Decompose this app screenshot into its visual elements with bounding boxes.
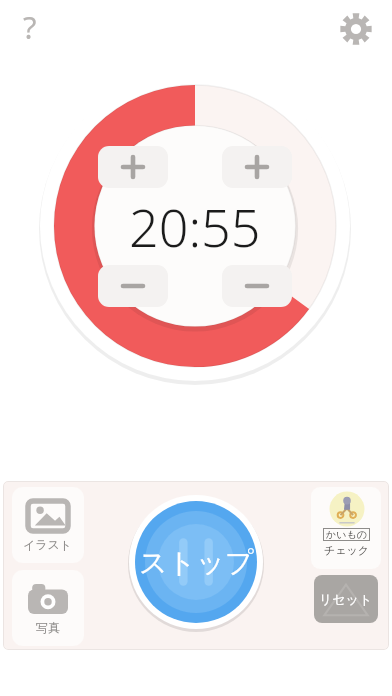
button[interactable]: Settings: [330, 3, 382, 55]
staticText: 20:55: [129, 191, 261, 262]
staticText: イラスト: [23, 537, 73, 552]
button[interactable]: 写真: [12, 570, 84, 646]
staticText: かいもの: [326, 528, 367, 541]
button[interactable]: イラスト: [12, 487, 84, 563]
button[interactable]: Increase: [222, 146, 292, 188]
button[interactable]: Increase: [98, 146, 168, 188]
button[interactable]: リセット: [314, 575, 378, 623]
button[interactable]: かいもの: [311, 487, 381, 569]
staticText: ストップ: [139, 545, 254, 580]
staticText: 写真: [36, 620, 60, 635]
button[interactable]: Decrease: [222, 265, 292, 307]
staticText: ?: [23, 6, 37, 48]
staticText: リセット: [319, 591, 373, 607]
staticText: チェック: [324, 543, 370, 557]
button[interactable]: ストップ: [128, 494, 264, 630]
button[interactable]: Help: [6, 3, 54, 51]
button[interactable]: Decrease: [98, 265, 168, 307]
